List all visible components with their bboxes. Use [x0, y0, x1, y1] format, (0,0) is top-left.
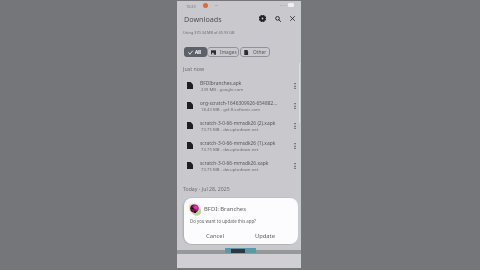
staticText: Just now: [183, 65, 205, 72]
button[interactable]: Cancel: [201, 230, 229, 242]
button[interactable]: Settings: [256, 12, 269, 25]
staticText: Cancel: [206, 232, 225, 240]
button[interactable]: scratch-3-0-66-mmsdk26 (1).xapk: [177, 134, 301, 154]
button[interactable]: All: [184, 47, 207, 57]
staticText: Downloads: [184, 14, 222, 24]
staticText: 73.75 MB - dw.uptodown.net: [201, 146, 259, 152]
button[interactable]: More options: [290, 159, 300, 173]
staticText: 73.75 MB - dw.uptodown.net: [201, 166, 259, 172]
staticText: Using 370.34 MB of 45.93 GB: [183, 30, 235, 35]
button[interactable]: More options: [290, 99, 300, 113]
button[interactable]: org-scratch-1646309926-654882…: [177, 94, 301, 114]
staticText: 73.75 MB - dw.uptodown.net: [201, 126, 259, 132]
staticText: BFDIbranches.apk: [200, 80, 242, 87]
button[interactable]: Other: [240, 47, 270, 57]
staticText: scratch-3-0-66-mmsdk26.xapk: [200, 160, 269, 167]
staticText: 18.43 MB - gsf-fl.softonic.com: [201, 106, 261, 112]
staticText: All: [195, 49, 201, 56]
button[interactable]: BFDIbranches.apk: [177, 74, 301, 94]
staticText: 239 MB - google.com: [201, 86, 244, 92]
staticText: Update: [255, 232, 275, 240]
button[interactable]: More options: [290, 79, 300, 93]
button[interactable]: scratch-3-0-66-mmsdk26.xapk: [177, 154, 301, 174]
staticText: BFDI: Branches: [204, 205, 246, 213]
staticText: scratch-3-0-66-mmsdk26 (1).xapk: [200, 140, 276, 147]
button[interactable]: Search: [271, 12, 284, 25]
staticText: 10:23: [186, 4, 196, 9]
button[interactable]: More options: [290, 119, 300, 133]
button[interactable]: Images: [207, 47, 239, 57]
staticText: Other: [253, 49, 267, 56]
staticText: Today - Jul 28, 2025: [183, 185, 230, 192]
staticText: org-scratch-1646309926-654882…: [200, 100, 278, 107]
staticText: Do you want to update this app?: [190, 218, 257, 224]
staticText: scratch-3-0-66-mmsdk26 (2).xapk: [200, 120, 276, 127]
button[interactable]: scratch-3-0-66-mmsdk26 (2).xapk: [177, 114, 301, 134]
button[interactable]: Update: [251, 230, 279, 242]
button[interactable]: Close: [286, 12, 299, 25]
button[interactable]: More options: [290, 139, 300, 153]
staticText: Images: [220, 49, 237, 56]
